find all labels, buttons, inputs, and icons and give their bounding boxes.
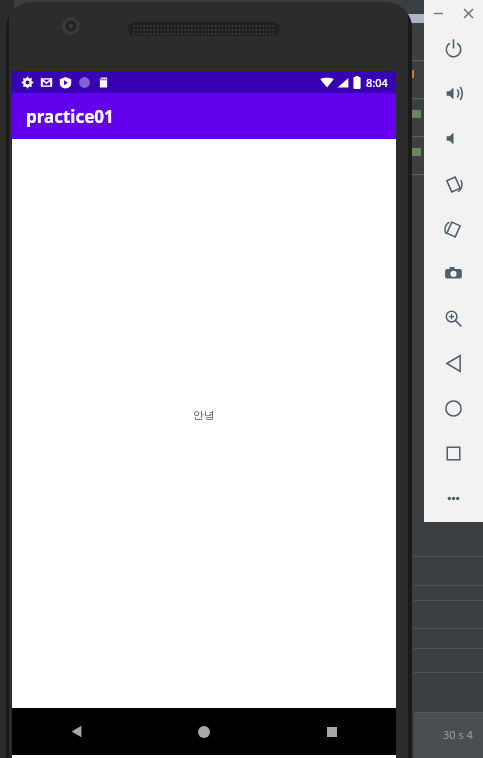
button[interactable]: Back bbox=[424, 341, 483, 386]
button[interactable]: Home bbox=[140, 708, 268, 755]
staticText: 안녕 bbox=[193, 408, 215, 422]
staticText: 30 s 4 bbox=[443, 727, 473, 742]
button[interactable]: Close bbox=[453, 0, 483, 26]
button[interactable]: Rotate left bbox=[424, 161, 483, 206]
button[interactable]: Minimize bbox=[424, 0, 453, 26]
button[interactable]: Overview bbox=[424, 431, 483, 476]
staticText: practice01 bbox=[26, 105, 114, 128]
button[interactable]: Back bbox=[12, 708, 140, 755]
button[interactable]: Recent apps bbox=[268, 708, 396, 755]
button[interactable]: practice01 bbox=[12, 93, 396, 139]
button[interactable]: Power bbox=[424, 26, 483, 71]
button[interactable]: Home bbox=[424, 386, 483, 431]
button[interactable]: Volume up bbox=[424, 71, 483, 116]
button[interactable]: Rotate right bbox=[424, 206, 483, 251]
button[interactable]: Zoom bbox=[424, 296, 483, 341]
button[interactable]: Take screenshot bbox=[424, 251, 483, 296]
button[interactable]: More bbox=[424, 476, 483, 521]
button[interactable]: Volume down bbox=[424, 116, 483, 161]
staticText: 8:04 bbox=[366, 75, 388, 90]
